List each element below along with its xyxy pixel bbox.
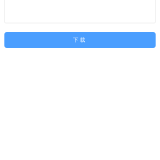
button[interactable]: 下载	[4, 32, 156, 48]
staticText: 下载	[73, 37, 85, 43]
